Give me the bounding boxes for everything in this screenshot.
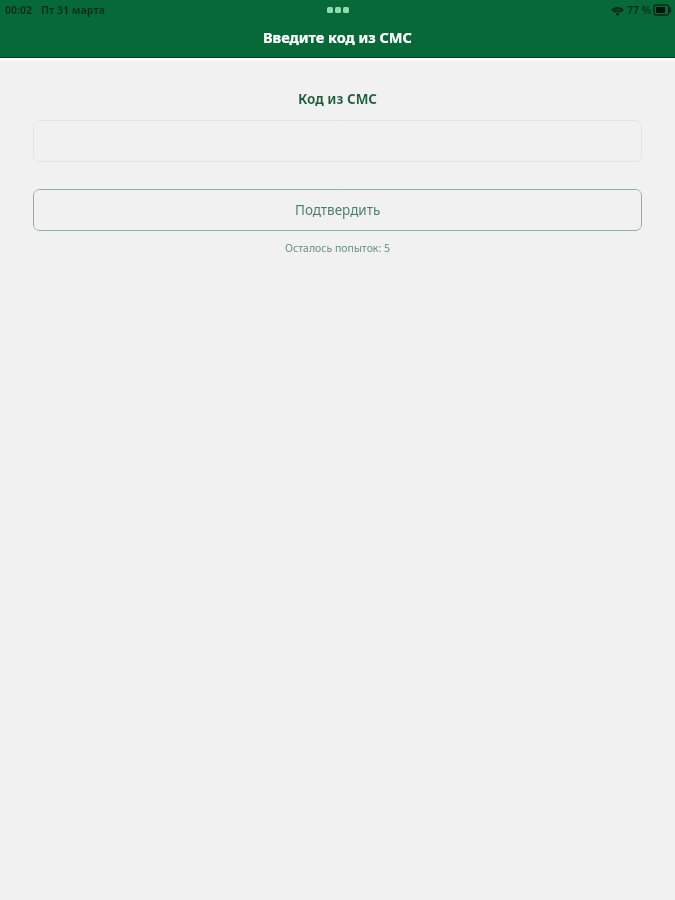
staticText: Подтвердить <box>295 201 381 219</box>
other: Батарея 77 процентов <box>654 5 671 15</box>
staticText: Код из СМС <box>0 90 675 108</box>
button[interactable]: Поле ввода кода из СМС <box>33 120 642 162</box>
staticText: 00:02 <box>5 3 32 17</box>
staticText: 77 % <box>627 3 652 17</box>
other: Wi-Fi <box>611 5 624 16</box>
staticText: Пт 31 марта <box>41 3 105 17</box>
staticText: Осталось попыток: 5 <box>0 241 675 255</box>
staticText: Введите код из СМС <box>263 27 412 47</box>
button[interactable]: Подтвердить <box>33 189 642 231</box>
